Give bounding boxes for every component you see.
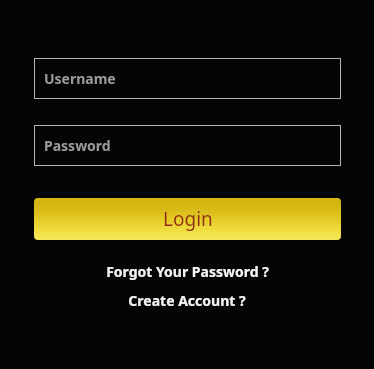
staticText: Create Account ?	[128, 291, 246, 310]
button[interactable]: Forgot Your Password ?	[0, 260, 374, 282]
staticText: Forgot Your Password ?	[106, 262, 269, 281]
staticText: Password	[44, 136, 111, 155]
button[interactable]: Login	[34, 198, 341, 240]
staticText: Login	[163, 206, 213, 232]
button[interactable]: Username	[34, 58, 341, 99]
button[interactable]: Password	[34, 125, 341, 166]
staticText: Username	[44, 69, 116, 88]
button[interactable]: Create Account ?	[0, 289, 374, 311]
